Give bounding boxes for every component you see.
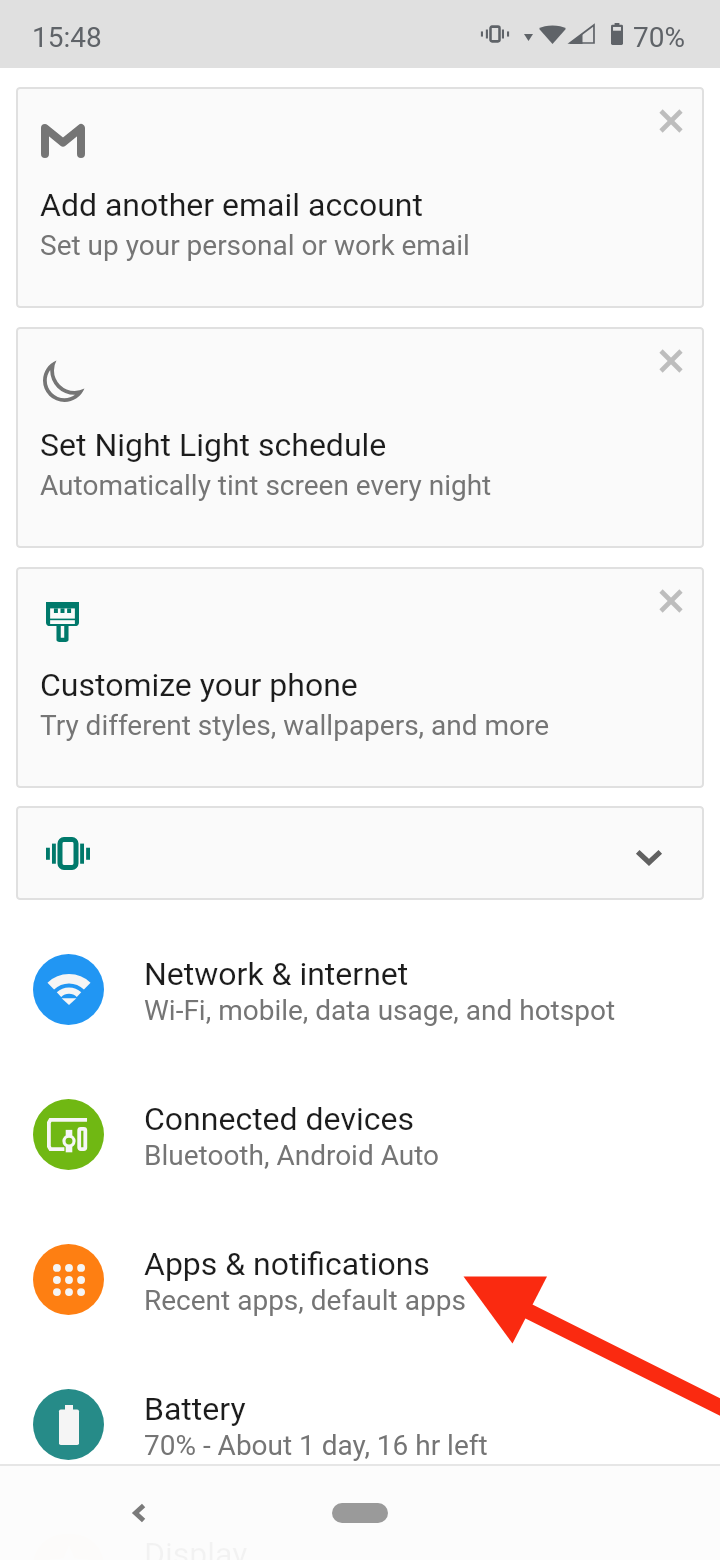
staticText: Bluetooth, Android Auto	[144, 1139, 440, 1172]
button[interactable]: Display	[0, 1497, 720, 1560]
button[interactable]: Back	[118, 1492, 160, 1534]
button[interactable]: Expand	[625, 834, 673, 882]
button[interactable]: Dismiss	[647, 577, 695, 625]
button[interactable]: Dismiss	[647, 337, 695, 385]
staticText: Try different styles, wallpapers, and mo…	[40, 709, 550, 742]
button[interactable]: Dismiss	[647, 97, 695, 145]
staticText: Wi-Fi, mobile, data usage, and hotspot	[144, 994, 616, 1027]
button[interactable]: Battery	[0, 1352, 720, 1497]
staticText: Battery	[144, 1390, 246, 1428]
staticText: Apps & notifications	[144, 1245, 430, 1283]
staticText: Connected devices	[144, 1100, 414, 1138]
button[interactable]: Customize your phone	[16, 567, 704, 788]
staticText: 70% - About 1 day, 16 hr left	[144, 1429, 488, 1462]
button[interactable]: Network & internet	[0, 917, 720, 1062]
staticText: Set Night Light schedule	[40, 426, 387, 464]
staticText: Add another email account	[40, 186, 423, 224]
button[interactable]: Expand	[16, 806, 704, 900]
staticText: Automatically tint screen every night	[40, 469, 492, 502]
button[interactable]: Set Night Light schedule	[16, 327, 704, 548]
staticText: Display	[144, 1535, 248, 1560]
staticText: Recent apps, default apps	[144, 1284, 466, 1317]
staticText: Customize your phone	[40, 666, 358, 704]
staticText: 70%	[633, 21, 685, 54]
button[interactable]: Add another email account	[16, 87, 704, 308]
staticText: 15:48	[32, 21, 102, 54]
button[interactable]: Home	[304, 1492, 416, 1534]
staticText: Network & internet	[144, 955, 409, 993]
button[interactable]: Apps & notifications	[0, 1207, 720, 1352]
button[interactable]: Connected devices	[0, 1062, 720, 1207]
staticText: Set up your personal or work email	[40, 229, 470, 262]
